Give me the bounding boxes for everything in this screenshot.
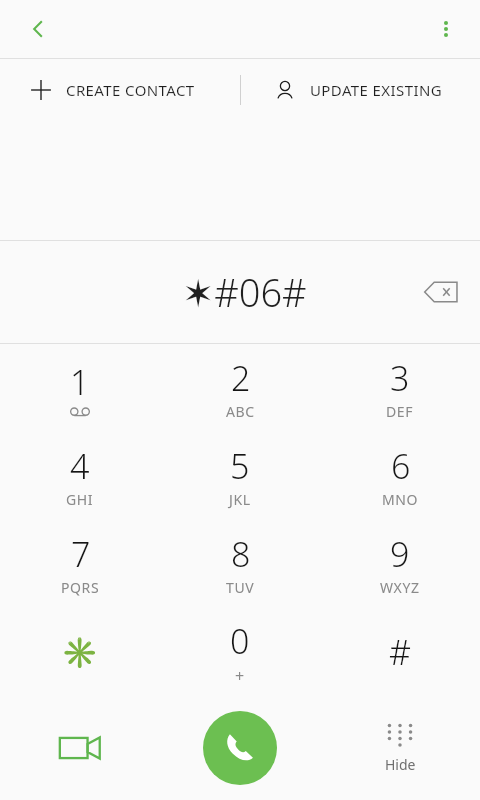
button[interactable]: 3 (320, 344, 480, 432)
button[interactable]: Hide (320, 696, 480, 800)
button[interactable]: 1 (0, 344, 160, 432)
button[interactable]: Backspace (414, 265, 468, 319)
staticText: WXYZ (380, 578, 420, 597)
staticText: ✳ (61, 635, 99, 670)
button[interactable]: 6 (320, 432, 480, 520)
button[interactable]: 4 (0, 432, 160, 520)
button[interactable]: 8 (160, 520, 320, 608)
staticText: CREATE CONTACT (66, 80, 195, 100)
button[interactable]: ✳ (0, 608, 160, 696)
button[interactable]: More options (422, 5, 470, 53)
staticText: MNO (382, 490, 419, 509)
button[interactable]: UPDATE EXISTING (242, 59, 480, 121)
staticText: 9 (390, 531, 410, 577)
staticText: 4 (70, 443, 90, 489)
staticText: 2 (231, 355, 251, 401)
staticText: 6 (391, 443, 411, 489)
staticText: Hide (385, 755, 416, 774)
staticText: TUV (226, 578, 255, 597)
staticText: 5 (230, 443, 250, 489)
button[interactable]: 2 (160, 344, 320, 432)
button[interactable]: CREATE CONTACT (0, 59, 240, 121)
staticText: DEF (386, 402, 414, 421)
staticText: GHI (66, 490, 94, 509)
staticText: + (235, 665, 245, 687)
staticText: ABC (226, 402, 255, 421)
staticText: 1 (70, 359, 90, 405)
button[interactable]: # (320, 608, 480, 696)
button[interactable]: Back (14, 5, 62, 53)
staticText: 8 (231, 531, 251, 577)
button[interactable]: 5 (160, 432, 320, 520)
staticText: 3 (390, 355, 410, 401)
button[interactable]: Call (203, 711, 277, 785)
staticText: PQRS (61, 578, 100, 597)
button[interactable]: 0 (160, 608, 320, 696)
staticText: 7 (71, 531, 91, 577)
button[interactable]: 7 (0, 520, 160, 608)
staticText: 0 (230, 618, 250, 664)
button[interactable]: Video call (0, 696, 160, 800)
staticText: ✶#06# (182, 266, 307, 318)
button[interactable]: 9 (320, 520, 480, 608)
staticText: UPDATE EXISTING (310, 80, 443, 100)
staticText: JKL (229, 490, 251, 509)
staticText: # (389, 629, 411, 675)
